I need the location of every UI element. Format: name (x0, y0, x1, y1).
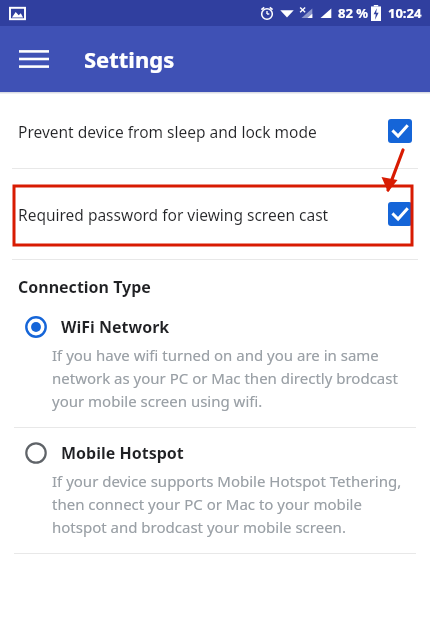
button[interactable]: Prevent device from sleep and lock mode (0, 94, 430, 168)
staticText: Settings (84, 44, 175, 74)
staticText: If your device supports Mobile Hotspot T… (52, 471, 408, 537)
staticText: 10:24 (388, 4, 422, 22)
button[interactable]: Required password for viewing screen cas… (18, 202, 412, 226)
staticText: Required password for viewing screen cas… (18, 204, 380, 225)
button[interactable]: WiFi Network selected (25, 316, 47, 338)
button[interactable]: Mobile Hotspot not selected (25, 442, 47, 464)
staticText: Connection Type (18, 276, 151, 298)
button[interactable]: Open navigation menu (12, 37, 56, 81)
button[interactable]: WiFi Network selected (0, 316, 430, 411)
button[interactable]: Checked (388, 119, 412, 143)
button[interactable]: Checked (388, 202, 412, 226)
staticText: Prevent device from sleep and lock mode (18, 121, 380, 142)
staticText: Mobile Hotspot (61, 442, 184, 464)
staticText: If you have wifi turned on and you are i… (52, 345, 408, 411)
staticText: WiFi Network (61, 316, 170, 338)
button[interactable]: Mobile Hotspot not selected (0, 442, 430, 537)
staticText: 82 % (338, 4, 368, 22)
